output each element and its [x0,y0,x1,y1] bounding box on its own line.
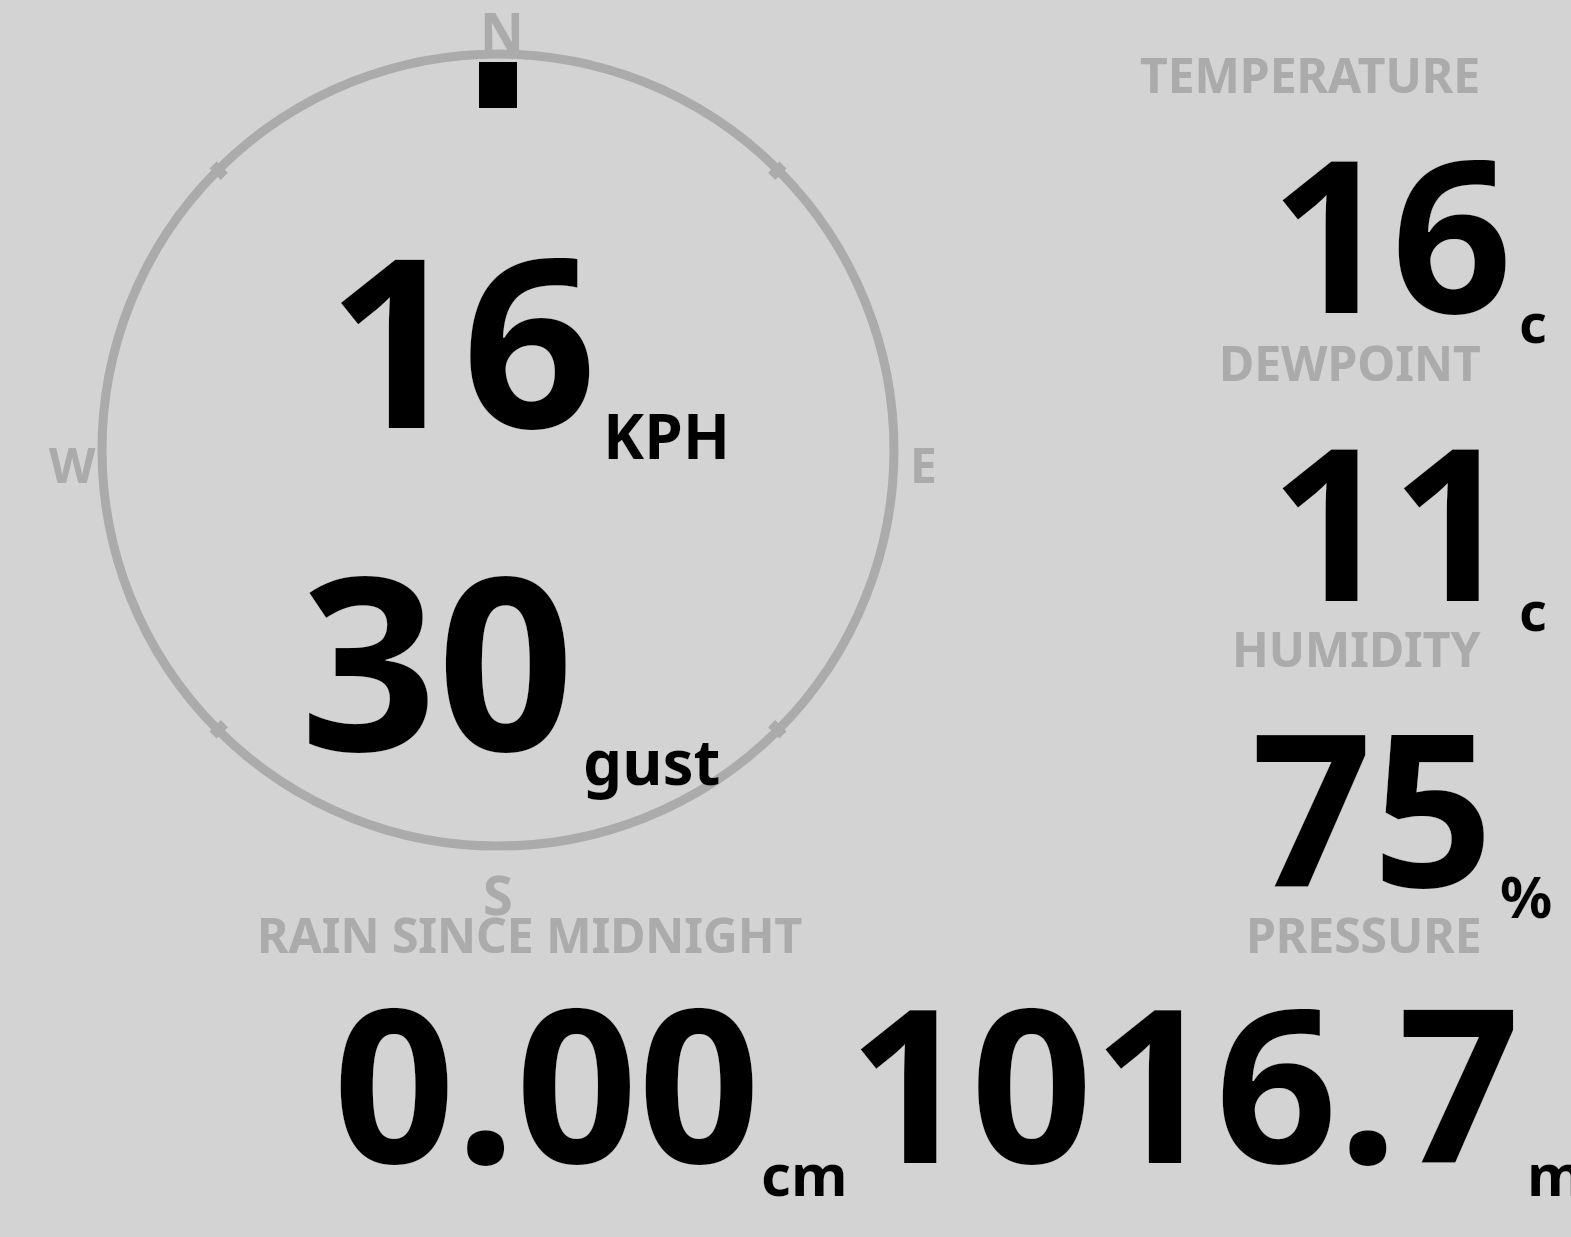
staticText: W [49,432,96,497]
other: Wind direction compass, north [0,0,1571,1237]
staticText: 30 [300,494,575,821]
button[interactable]: 0.00 [333,934,1571,1225]
staticText: HUMIDITY [1232,616,1481,681]
staticText: 11 [1270,374,1513,663]
staticText: KPH [603,393,731,477]
staticText: TEMPERATURE [1140,42,1481,107]
staticText: 1016.7 [848,934,1521,1225]
staticText: N [480,0,524,68]
staticText: 75 [1251,660,1494,949]
button[interactable]: 16 [327,176,731,497]
staticText: RAIN SINCE MIDNIGHT [257,902,803,967]
staticText: E [910,432,937,497]
staticText: DEWPOINT [1219,330,1481,395]
staticText: PRESSURE [1246,902,1482,967]
button[interactable]: 30 [300,494,721,821]
staticText: % [1500,856,1553,935]
staticText: 16 [327,176,597,497]
staticText: gust [583,719,721,803]
staticText: c [1519,285,1547,359]
staticText: S [483,857,513,931]
staticText: 16 [1270,86,1513,375]
button[interactable]: 75 [1251,660,1547,949]
staticText: 0.00 [333,934,761,1225]
button[interactable]: 11 [1270,374,1541,663]
staticText: cm [761,1134,848,1213]
staticText: c [1519,573,1547,647]
button[interactable]: 16 [1270,86,1541,375]
staticText: mb [1527,1134,1571,1213]
